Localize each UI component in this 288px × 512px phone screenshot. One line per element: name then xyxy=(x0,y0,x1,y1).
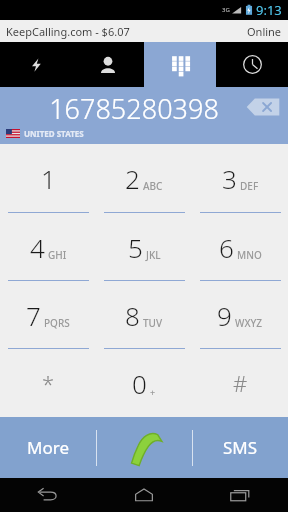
staticText: 8 xyxy=(125,298,140,333)
button[interactable]: Recents xyxy=(216,42,288,87)
staticText: * xyxy=(42,368,55,398)
staticText: 5 xyxy=(128,230,143,265)
staticText: KeepCalling.com - $6.07 xyxy=(6,24,130,39)
button[interactable]: 7 xyxy=(0,281,96,349)
staticText: UNITED STATES xyxy=(24,128,84,139)
button[interactable]: 4 xyxy=(0,213,96,281)
staticText: More xyxy=(27,436,69,459)
button[interactable]: Back xyxy=(0,478,96,512)
staticText: 0 xyxy=(132,366,147,401)
staticText: PQRS xyxy=(44,316,70,330)
staticText: GHI xyxy=(48,248,67,262)
button[interactable]: Backspace xyxy=(246,97,280,117)
staticText: DEF xyxy=(240,179,259,193)
staticText: Online xyxy=(247,24,282,39)
staticText: ABC xyxy=(143,179,163,193)
button[interactable]: 3 xyxy=(192,144,288,213)
button[interactable]: 8 xyxy=(96,281,192,349)
staticText: 3 xyxy=(222,161,237,196)
button[interactable]: # xyxy=(192,349,288,417)
button[interactable]: Home xyxy=(96,478,192,512)
button[interactable]: SMS xyxy=(193,417,288,478)
staticText: 3G xyxy=(222,6,230,14)
staticText: 1 xyxy=(41,161,56,196)
button[interactable]: Contacts xyxy=(72,42,144,87)
staticText: 6 xyxy=(219,230,234,265)
staticText: 9 xyxy=(217,298,232,333)
button[interactable]: * xyxy=(0,349,96,417)
staticText: SMS xyxy=(223,436,258,459)
button[interactable]: 1 xyxy=(0,144,96,213)
button[interactable]: 5 xyxy=(96,213,192,281)
staticText: JKL xyxy=(146,248,161,262)
button[interactable]: More xyxy=(0,417,96,478)
button[interactable]: 0 xyxy=(96,349,192,417)
button[interactable]: 9 xyxy=(192,281,288,349)
staticText: 2 xyxy=(125,161,140,196)
staticText: MNO xyxy=(237,248,262,262)
button[interactable]: 6 xyxy=(192,213,288,281)
button[interactable]: Speed dial xyxy=(0,42,72,87)
staticText: 7 xyxy=(26,298,41,333)
staticText: TUV xyxy=(143,316,163,330)
staticText: 16785280398 xyxy=(20,90,248,127)
staticText: 4 xyxy=(30,230,45,265)
button[interactable]: Dialpad xyxy=(144,42,216,87)
staticText: WXYZ xyxy=(235,316,263,330)
staticText: + xyxy=(150,386,156,398)
button[interactable]: Recent apps xyxy=(192,478,288,512)
staticText: # xyxy=(233,368,248,398)
button[interactable]: Call xyxy=(97,417,192,478)
staticText: 9:13 xyxy=(256,1,282,19)
button[interactable]: 2 xyxy=(96,144,192,213)
